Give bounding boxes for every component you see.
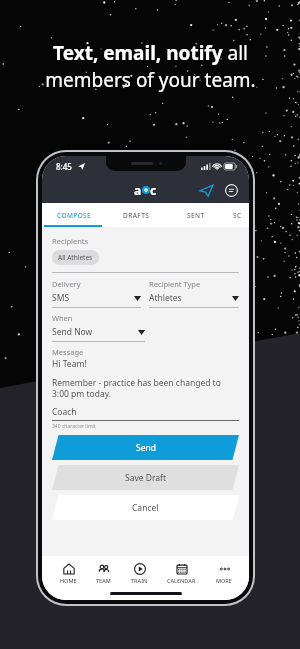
button[interactable]: TEAM xyxy=(94,561,113,585)
staticText: TEAM xyxy=(96,577,111,584)
button[interactable]: TRAIN xyxy=(129,561,150,585)
button[interactable]: Send message xyxy=(198,182,214,198)
button[interactable]: Chat xyxy=(223,182,239,198)
staticText: HOME xyxy=(60,577,77,584)
button[interactable]: Cancel xyxy=(52,495,239,520)
staticText: Text, email, notify all members of your … xyxy=(45,40,256,93)
button[interactable]: HOME xyxy=(58,561,79,585)
staticText: c xyxy=(150,182,157,198)
staticText: 8:45 xyxy=(56,161,72,172)
staticText: Remember - practice has been changed to … xyxy=(52,377,239,399)
button[interactable]: Recipient Type xyxy=(149,279,239,308)
staticText: MORE xyxy=(216,577,232,584)
button[interactable]: DRAFTS xyxy=(106,203,167,227)
staticText: COMPOSE xyxy=(57,211,92,220)
staticText: Athletes xyxy=(149,292,182,304)
staticText: Delivery xyxy=(52,279,81,289)
staticText: Send xyxy=(136,442,156,454)
staticText: Message xyxy=(52,347,84,357)
button[interactable]: Send xyxy=(52,435,239,460)
staticText: When xyxy=(52,313,73,323)
staticText: Cancel xyxy=(132,502,159,514)
button[interactable]: Save Draft xyxy=(52,465,239,490)
button[interactable]: When xyxy=(52,313,145,342)
staticText: TRAIN xyxy=(131,577,148,584)
staticText: a xyxy=(134,182,142,198)
staticText: Hi Team! xyxy=(52,358,87,370)
button[interactable]: All Athletes xyxy=(52,250,99,265)
staticText: SENT xyxy=(187,211,205,220)
staticText: CALENDAR xyxy=(167,577,196,584)
staticText: 340 character limit xyxy=(52,423,96,430)
button[interactable]: SENT xyxy=(167,203,225,227)
staticText: DRAFTS xyxy=(123,211,150,220)
button[interactable]: MORE xyxy=(214,561,234,585)
staticText: SC xyxy=(233,211,242,220)
staticText: Recipients xyxy=(52,236,89,246)
staticText: SMS xyxy=(52,292,70,304)
button[interactable]: CALENDAR xyxy=(165,561,198,585)
staticText: Save Draft xyxy=(125,472,167,484)
button[interactable]: COMPOSE xyxy=(42,203,106,227)
staticText: Send Now xyxy=(52,326,93,338)
button[interactable]: Delivery xyxy=(52,279,141,308)
staticText: Recipient Type xyxy=(149,279,201,289)
staticText: All Athletes xyxy=(58,253,93,262)
staticText: Coach xyxy=(52,406,77,418)
button[interactable]: SC xyxy=(225,203,249,227)
